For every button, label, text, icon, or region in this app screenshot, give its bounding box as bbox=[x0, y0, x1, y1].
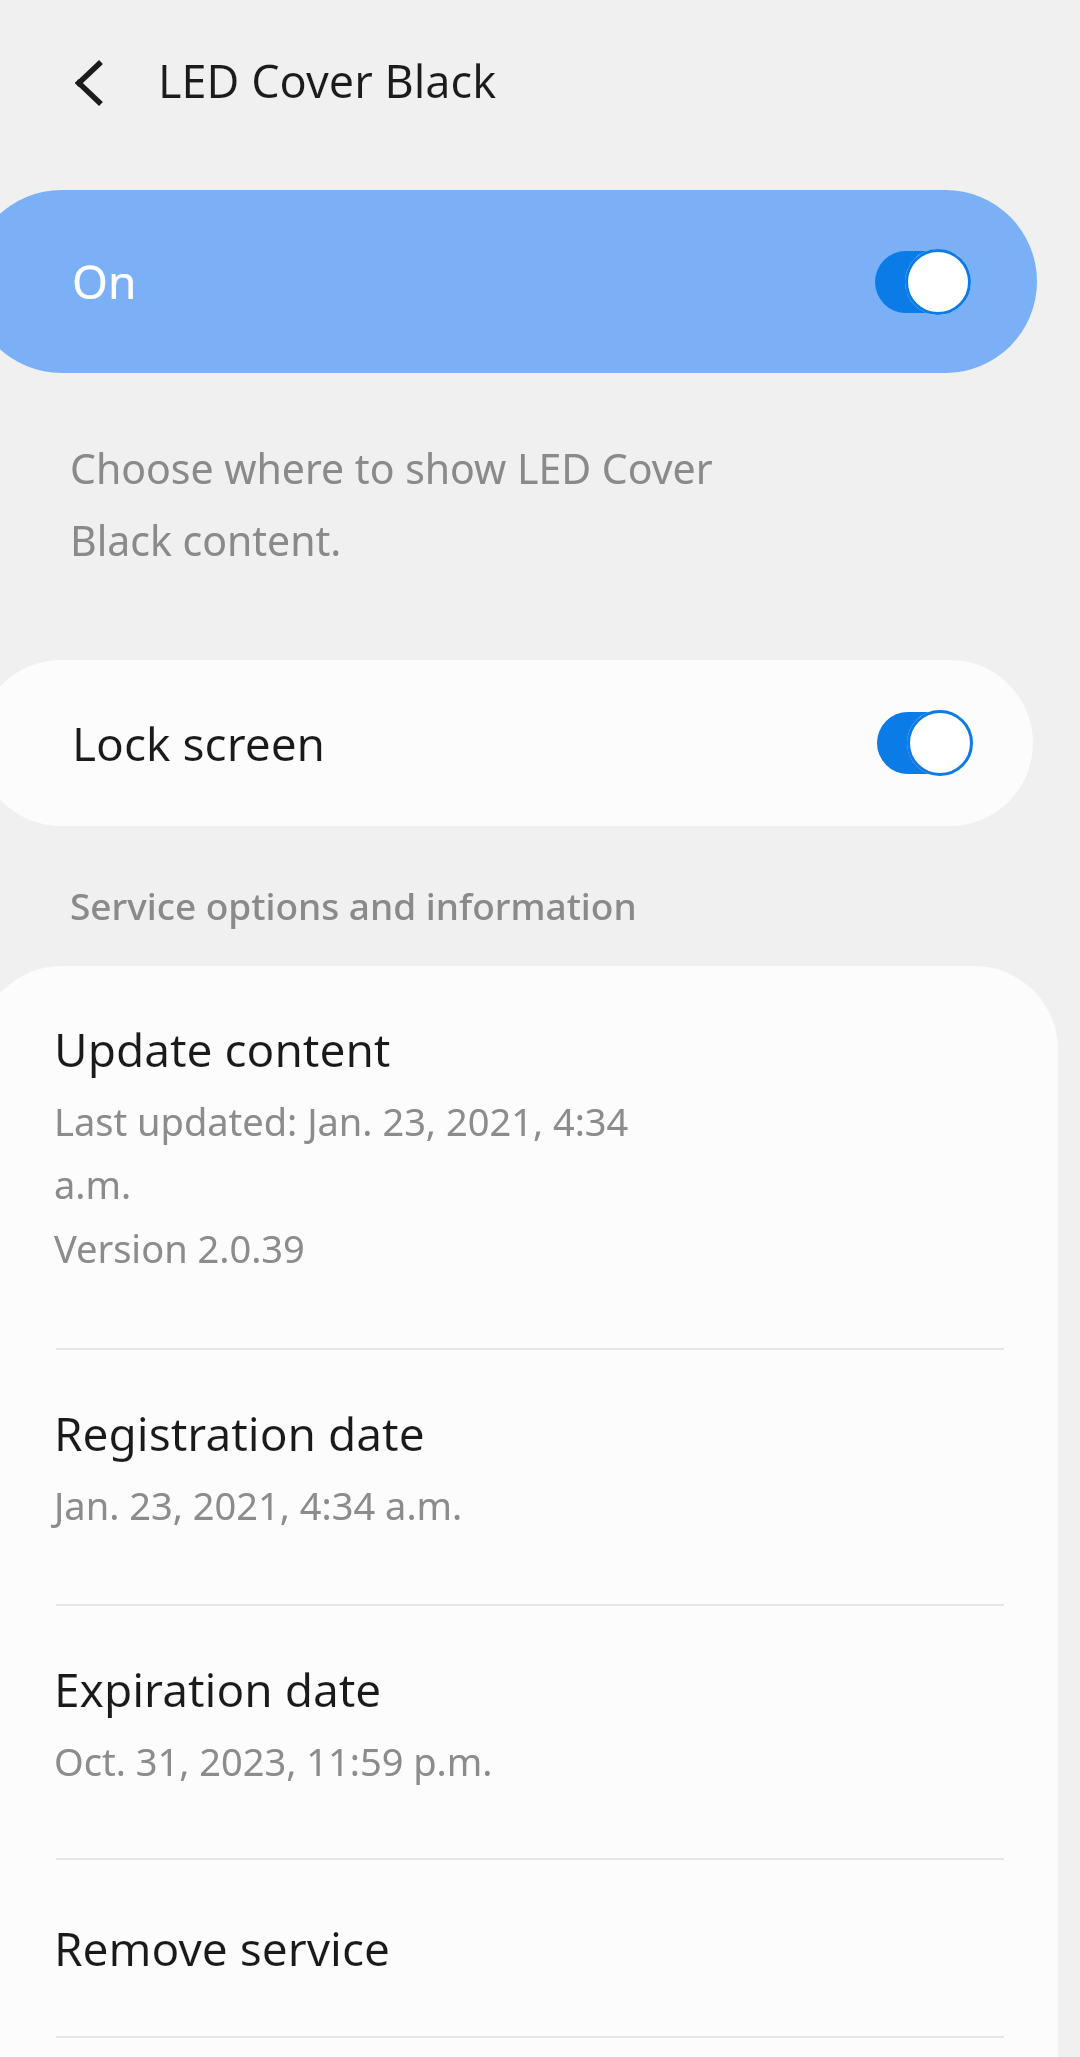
staticText: Jan. 23, 2021, 4:34 a.m. bbox=[54, 1479, 463, 1531]
staticText: Lock screen bbox=[72, 712, 326, 775]
button[interactable]: Back bbox=[42, 35, 138, 131]
button[interactable]: Registration date bbox=[0, 1350, 1033, 1604]
staticText: Service options and information bbox=[70, 880, 637, 930]
button[interactable]: Lock screen bbox=[0, 660, 1033, 826]
staticText: Expiration date bbox=[54, 1658, 382, 1721]
staticText: Remove service bbox=[54, 1917, 390, 1980]
button[interactable]: On bbox=[0, 190, 1037, 373]
button[interactable]: Toggle bbox=[871, 705, 977, 781]
button[interactable]: Remove service bbox=[0, 1860, 1033, 2036]
staticText: Update content bbox=[54, 1018, 391, 1081]
staticText: LED Cover Black bbox=[158, 50, 497, 111]
staticText: Choose where to show LED Cover Black con… bbox=[70, 440, 1030, 568]
staticText: Oct. 31, 2023, 11:59 p.m. bbox=[54, 1735, 493, 1787]
staticText: Last updated: Jan. 23, 2021, 4:34 a.m. V… bbox=[54, 1095, 629, 1274]
button[interactable]: Update content bbox=[0, 966, 1033, 1348]
staticText: Registration date bbox=[54, 1402, 425, 1465]
button[interactable]: Expiration date bbox=[0, 1606, 1033, 1860]
staticText: On bbox=[72, 250, 137, 313]
button[interactable]: Toggle bbox=[869, 244, 975, 320]
